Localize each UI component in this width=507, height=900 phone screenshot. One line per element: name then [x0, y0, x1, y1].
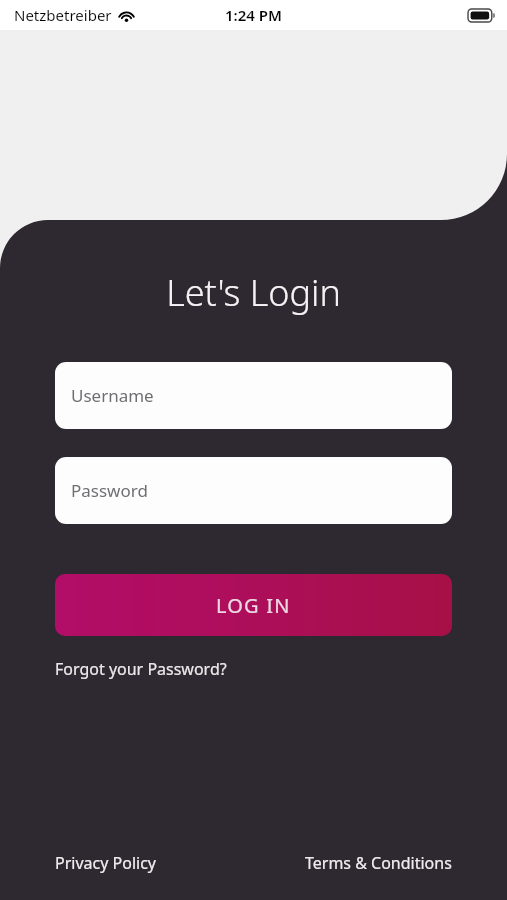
button[interactable]: Password: [55, 457, 452, 524]
staticText: Forgot your Password?: [55, 658, 227, 680]
staticText: Password: [71, 479, 148, 502]
button[interactable]: Privacy Policy: [55, 852, 156, 874]
staticText: 1:24 PM: [225, 5, 282, 25]
button[interactable]: Forgot your Password?: [55, 658, 227, 680]
staticText: Username: [71, 384, 154, 407]
staticText: Privacy Policy: [55, 852, 156, 874]
staticText: LOG IN: [216, 592, 291, 619]
staticText: Terms & Conditions: [305, 852, 452, 874]
button[interactable]: Username: [55, 362, 452, 429]
other: Battery full: [468, 9, 495, 22]
other: Wi-Fi: [118, 9, 135, 22]
button[interactable]: LOG IN: [55, 574, 452, 636]
staticText: Let's Login: [0, 268, 507, 317]
button[interactable]: Terms & Conditions: [305, 852, 452, 874]
staticText: Netzbetreiber: [14, 5, 112, 25]
